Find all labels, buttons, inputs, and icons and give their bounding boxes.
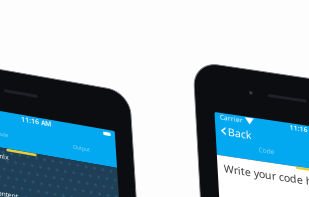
staticText: Write your code here [218, 157, 309, 172]
staticText: Output [69, 120, 86, 127]
staticText: let data = mlx [0, 141, 4, 150]
button[interactable]: Code [0, 120, 43, 127]
button[interactable]: Back [217, 120, 248, 134]
staticText: Carrier [217, 109, 240, 118]
staticText: export" content [0, 179, 10, 188]
button[interactable]: Code [212, 136, 309, 145]
staticText: Back [224, 120, 248, 134]
button[interactable]: Output [42, 120, 112, 127]
